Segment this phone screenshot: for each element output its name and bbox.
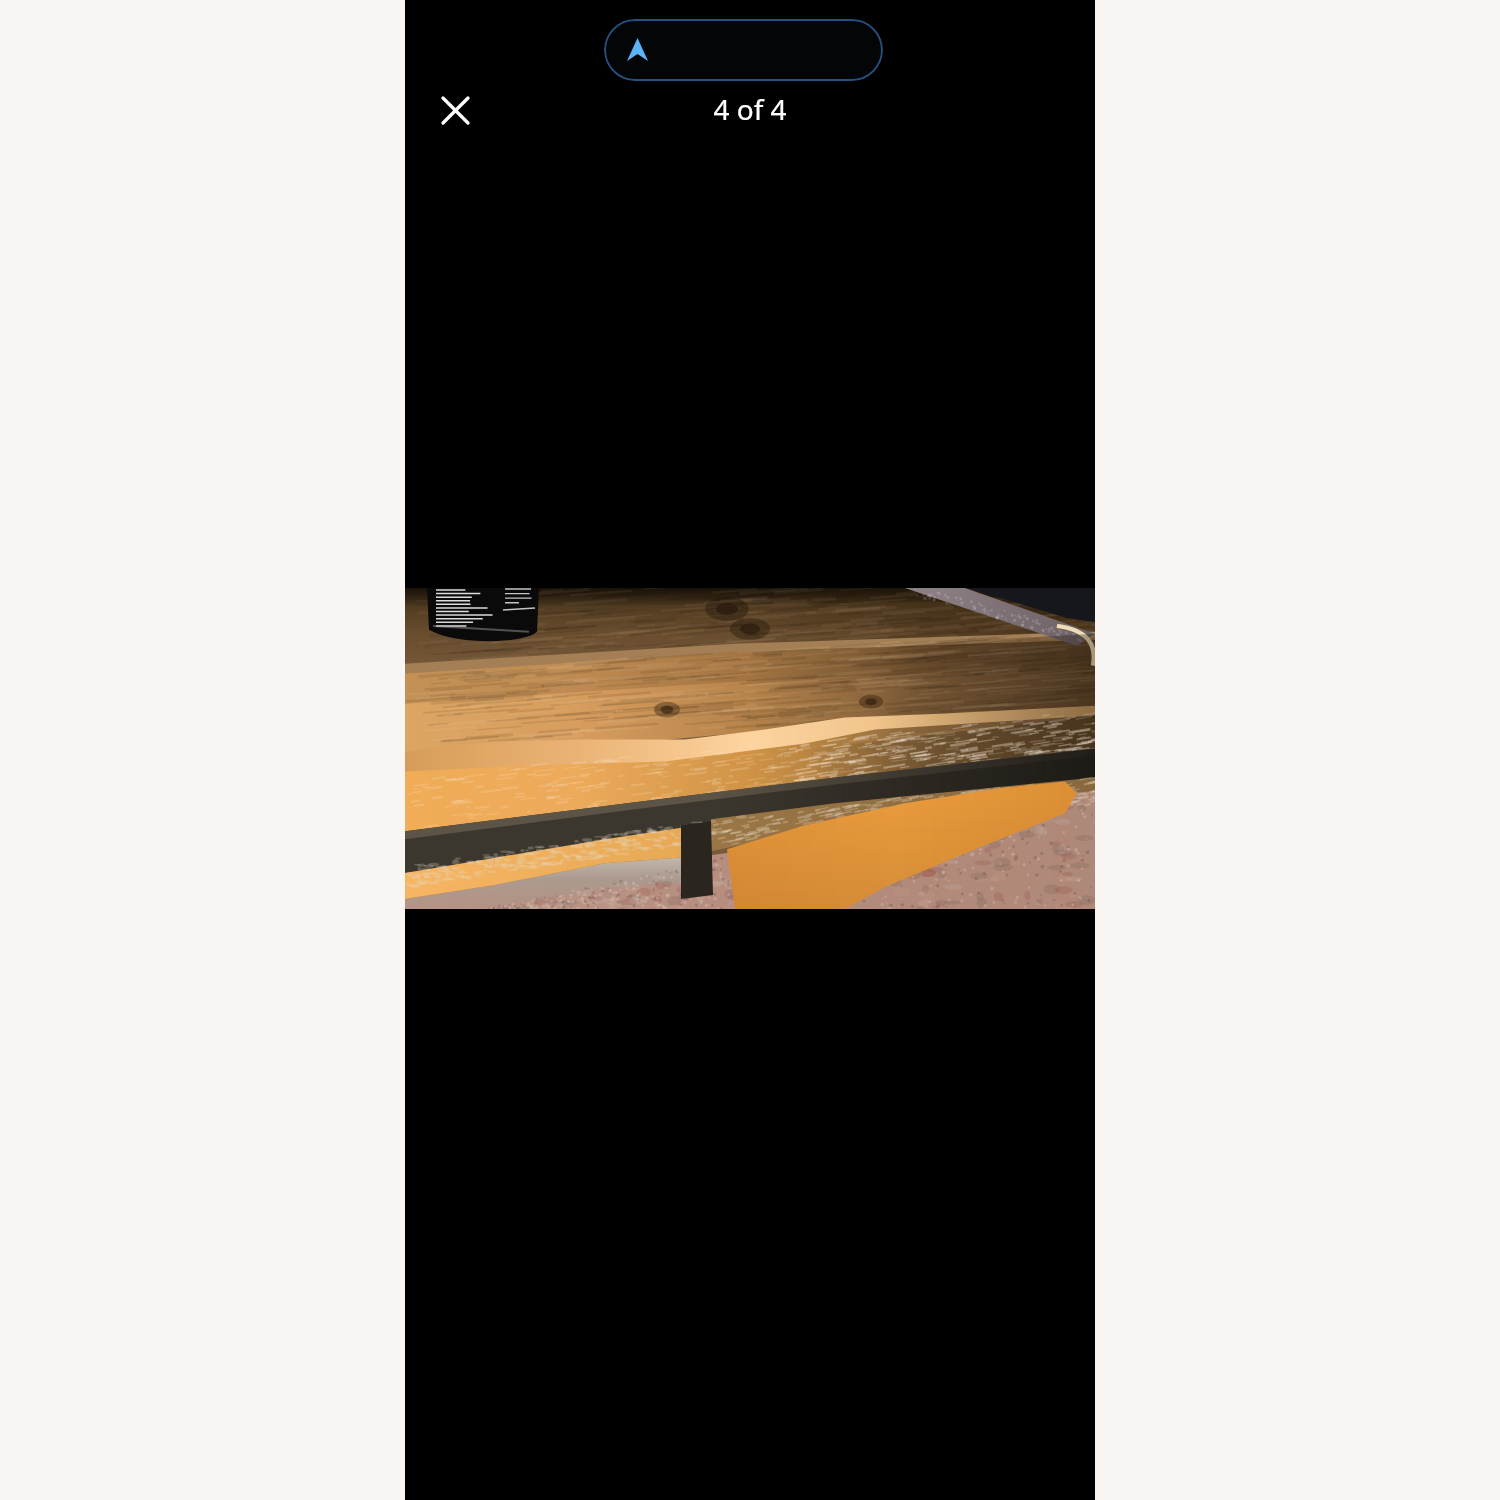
staticText: 4 of 4: [405, 90, 1095, 128]
button[interactable]: Close: [429, 84, 481, 136]
button[interactable]: Location in use: [604, 19, 883, 81]
